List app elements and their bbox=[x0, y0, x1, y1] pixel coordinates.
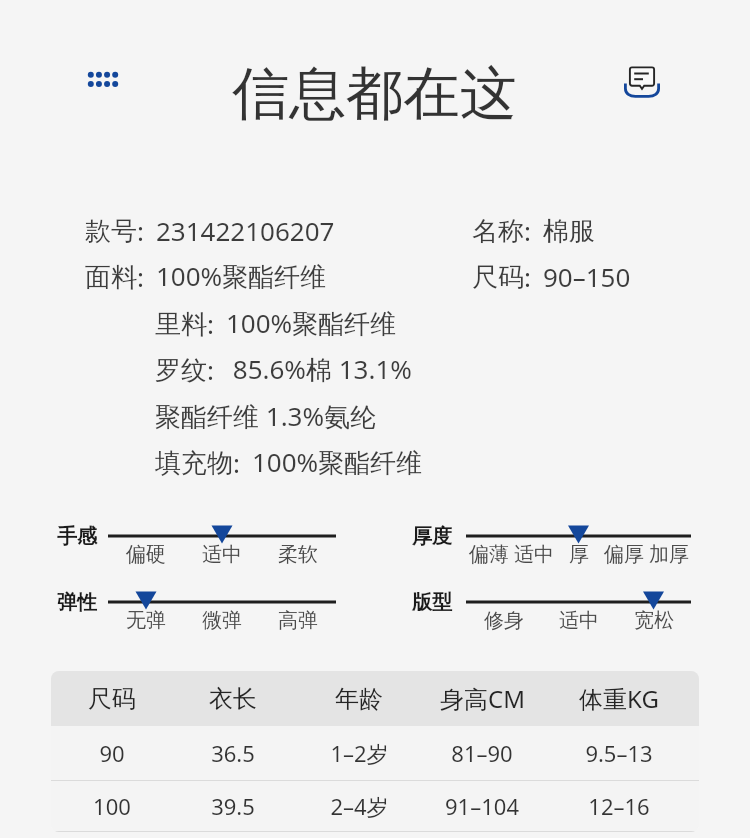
staticText: 100 bbox=[93, 791, 131, 821]
button[interactable]: 偏硬 bbox=[86, 538, 206, 570]
button[interactable]: 高弹 bbox=[238, 604, 358, 636]
staticText: 1–2岁 bbox=[330, 738, 389, 768]
staticText: : bbox=[233, 445, 240, 480]
button[interactable]: 宽松 bbox=[594, 604, 714, 636]
button[interactable]: 柔软 bbox=[238, 538, 358, 570]
button[interactable]: 厚 bbox=[519, 538, 639, 570]
staticText: 100%聚酯纤维 bbox=[252, 444, 423, 480]
staticText: : bbox=[207, 352, 214, 387]
button[interactable]: 手感 bbox=[57, 524, 97, 549]
staticText: 39.5 bbox=[211, 791, 255, 821]
button[interactable]: 弹性 bbox=[57, 590, 97, 615]
staticText: 微弹 bbox=[202, 608, 242, 633]
staticText: 修身 bbox=[484, 608, 524, 633]
button[interactable]: Menu bbox=[82, 64, 124, 96]
staticText: 面料 bbox=[85, 261, 137, 294]
staticText: 宽松 bbox=[634, 608, 674, 633]
staticText: 棉服 bbox=[543, 215, 595, 248]
staticText: 适中 bbox=[559, 608, 599, 633]
button[interactable]: 加厚 bbox=[609, 538, 729, 570]
button[interactable]: 适中 bbox=[519, 604, 639, 636]
staticText: 偏硬 bbox=[126, 542, 166, 567]
staticText: 体重KG bbox=[579, 682, 659, 715]
staticText: 填充物 bbox=[155, 447, 233, 480]
button[interactable]: 适中 bbox=[474, 538, 594, 570]
button[interactable]: 微弹 bbox=[162, 604, 282, 636]
staticText: 36.5 bbox=[211, 738, 255, 768]
button[interactable]: 偏薄 bbox=[429, 538, 549, 570]
staticText: 罗纹 bbox=[155, 354, 207, 387]
staticText: 信息都在这 bbox=[232, 58, 517, 130]
staticText: 名称 bbox=[472, 215, 524, 248]
staticText: 12–16 bbox=[588, 791, 650, 821]
staticText: 91–104 bbox=[445, 791, 519, 821]
staticText: 衣长 bbox=[209, 684, 257, 714]
staticText: 手感 bbox=[57, 524, 97, 549]
button[interactable]: 偏厚 bbox=[564, 538, 684, 570]
staticText: 偏薄 bbox=[469, 542, 509, 567]
staticText: : bbox=[207, 306, 214, 341]
staticText: 高弹 bbox=[278, 608, 318, 633]
button[interactable]: 修身 bbox=[444, 604, 564, 636]
staticText: : bbox=[524, 213, 531, 248]
button[interactable]: 厚度 bbox=[412, 524, 452, 549]
staticText: 85.6%棉 13.1% bbox=[226, 351, 412, 387]
staticText: 231422106207 bbox=[156, 213, 335, 248]
staticText: 厚度 bbox=[412, 524, 452, 549]
staticText: 90–150 bbox=[543, 259, 631, 294]
staticText: 版型 bbox=[412, 590, 452, 615]
staticText: 适中 bbox=[514, 542, 554, 567]
staticText: 适中 bbox=[202, 542, 242, 567]
button[interactable]: Messages bbox=[620, 58, 666, 100]
staticText: 尺码 bbox=[88, 684, 136, 714]
staticText: : bbox=[524, 259, 531, 294]
staticText: 100%聚酯纤维 bbox=[226, 305, 397, 341]
staticText: 81–90 bbox=[451, 738, 513, 768]
staticText: 2–4岁 bbox=[330, 791, 389, 821]
staticText: 尺码 bbox=[472, 261, 524, 294]
staticText: 厚 bbox=[569, 542, 589, 567]
staticText: 身高CM bbox=[440, 682, 525, 715]
button[interactable]: 版型 bbox=[412, 590, 452, 615]
staticText: 弹性 bbox=[57, 590, 97, 615]
staticText: 偏厚 bbox=[604, 542, 644, 567]
staticText: 柔软 bbox=[278, 542, 318, 567]
staticText: 加厚 bbox=[649, 542, 689, 567]
button[interactable]: 适中 bbox=[162, 538, 282, 570]
staticText: : bbox=[137, 259, 144, 294]
staticText: 聚酯纤维 1.3%氨纶 bbox=[155, 398, 377, 434]
staticText: 9.5–13 bbox=[585, 738, 653, 768]
staticText: : bbox=[137, 213, 144, 248]
staticText: 100%聚酯纤维 bbox=[156, 258, 327, 294]
button[interactable]: 无弹 bbox=[86, 604, 206, 636]
staticText: 90 bbox=[99, 738, 125, 768]
staticText: 无弹 bbox=[126, 608, 166, 633]
staticText: 款号 bbox=[85, 215, 137, 248]
staticText: 年龄 bbox=[335, 684, 383, 714]
staticText: 里料 bbox=[155, 308, 207, 341]
